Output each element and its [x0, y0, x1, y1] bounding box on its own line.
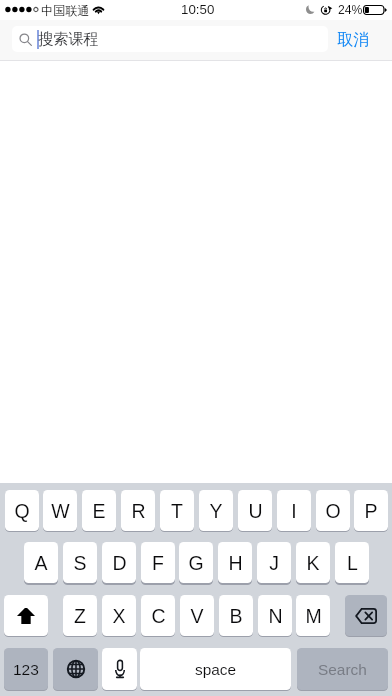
- staticText: 搜索课程: [38, 29, 99, 48]
- button[interactable]: Change keyboard: [53, 648, 98, 690]
- button[interactable]: E: [82, 490, 116, 531]
- button[interactable]: T: [160, 490, 194, 531]
- button[interactable]: Shift: [4, 595, 48, 636]
- staticText: 10:50: [181, 2, 215, 17]
- button[interactable]: Numbers and symbols: [4, 648, 48, 690]
- staticText: T: [171, 500, 183, 522]
- button[interactable]: V: [180, 595, 214, 636]
- button[interactable]: Y: [199, 490, 233, 531]
- button[interactable]: space: [140, 648, 291, 690]
- button[interactable]: P: [354, 490, 388, 531]
- staticText: 123: [13, 661, 39, 678]
- button[interactable]: L: [335, 542, 369, 583]
- staticText: V: [190, 605, 204, 627]
- staticText: Q: [14, 500, 30, 522]
- button[interactable]: N: [258, 595, 292, 636]
- staticText: F: [152, 552, 164, 574]
- button[interactable]: Dictate: [102, 648, 137, 690]
- button[interactable]: X: [102, 595, 136, 636]
- staticText: G: [188, 552, 204, 574]
- button[interactable]: R: [121, 490, 155, 531]
- staticText: A: [34, 552, 48, 574]
- button[interactable]: K: [296, 542, 330, 583]
- staticText: P: [364, 500, 378, 522]
- staticText: W: [51, 500, 70, 522]
- staticText: S: [73, 552, 87, 574]
- staticText: 中国联通: [41, 3, 90, 18]
- staticText: C: [151, 605, 166, 627]
- staticText: D: [112, 552, 127, 574]
- staticText: M: [305, 605, 322, 627]
- button[interactable]: I: [277, 490, 311, 531]
- staticText: I: [291, 500, 297, 522]
- button[interactable]: M: [296, 595, 330, 636]
- button[interactable]: U: [238, 490, 272, 531]
- staticText: L: [347, 552, 358, 574]
- button[interactable]: B: [219, 595, 253, 636]
- button[interactable]: 搜索课程: [12, 26, 328, 52]
- button[interactable]: A: [24, 542, 58, 583]
- staticText: Z: [74, 605, 86, 627]
- button[interactable]: Q: [5, 490, 39, 531]
- staticText: U: [248, 500, 263, 522]
- staticText: 取消: [337, 29, 370, 49]
- button[interactable]: D: [102, 542, 136, 583]
- staticText: 24%: [338, 3, 363, 17]
- button[interactable]: J: [257, 542, 291, 583]
- staticText: B: [229, 605, 243, 627]
- staticText: N: [268, 605, 283, 627]
- button[interactable]: C: [141, 595, 175, 636]
- button[interactable]: Backspace: [345, 595, 387, 636]
- button[interactable]: W: [43, 490, 77, 531]
- staticText: R: [131, 500, 146, 522]
- staticText: E: [92, 500, 106, 522]
- button[interactable]: G: [179, 542, 213, 583]
- button[interactable]: O: [316, 490, 350, 531]
- button[interactable]: S: [63, 542, 97, 583]
- staticText: Y: [209, 500, 223, 522]
- staticText: H: [228, 552, 243, 574]
- staticText: J: [269, 552, 279, 574]
- button[interactable]: Z: [63, 595, 97, 636]
- button[interactable]: Search: [297, 648, 388, 690]
- staticText: Search: [318, 661, 367, 678]
- staticText: space: [195, 661, 237, 678]
- button[interactable]: H: [218, 542, 252, 583]
- staticText: K: [306, 552, 320, 574]
- button[interactable]: 取消: [334, 25, 373, 53]
- staticText: O: [325, 500, 341, 522]
- staticText: X: [112, 605, 126, 627]
- button[interactable]: F: [141, 542, 175, 583]
